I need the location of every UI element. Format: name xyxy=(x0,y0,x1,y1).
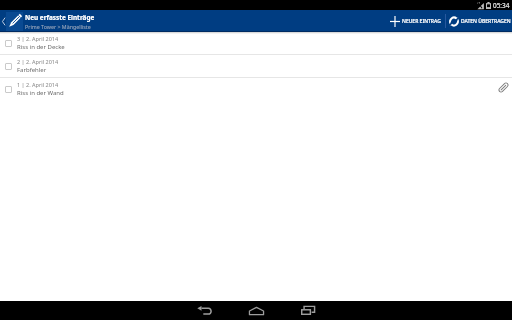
button[interactable]: Auswählen xyxy=(5,62,14,71)
button[interactable]: DATEN ÜBERTRAGEN xyxy=(449,10,511,32)
button[interactable]: Auswählen xyxy=(5,85,14,94)
staticText: 1 | 2. April 2014 xyxy=(17,81,59,88)
button[interactable]: Auswählen xyxy=(0,32,512,54)
button[interactable]: Zurück xyxy=(185,301,223,320)
button[interactable]: Auswählen xyxy=(0,55,512,77)
staticText: 2 | 2. April 2014 xyxy=(17,58,59,65)
button[interactable]: Auswählen xyxy=(0,78,512,100)
staticText: Neu erfasste Einträge xyxy=(25,13,95,22)
button[interactable]: NEUER EINTRAG xyxy=(390,10,441,32)
staticText: Farbfehler xyxy=(17,66,47,74)
button[interactable]: Anhang xyxy=(492,76,512,98)
staticText: 05:34 xyxy=(493,1,510,10)
button[interactable]: Zurück xyxy=(0,10,23,32)
staticText: 3 | 2. April 2014 xyxy=(17,35,59,42)
staticText: Prime Tower > Mängelliste xyxy=(25,23,91,30)
button[interactable]: Auswählen xyxy=(5,39,14,48)
staticText: Riss in der Decke xyxy=(17,43,65,51)
staticText: Riss in der Wand xyxy=(17,89,64,97)
staticText: NEUER EINTRAG xyxy=(402,18,441,25)
button[interactable]: Übersicht xyxy=(289,301,327,320)
staticText: DATEN ÜBERTRAGEN xyxy=(461,18,511,25)
button[interactable]: Startbildschirm xyxy=(237,301,275,320)
